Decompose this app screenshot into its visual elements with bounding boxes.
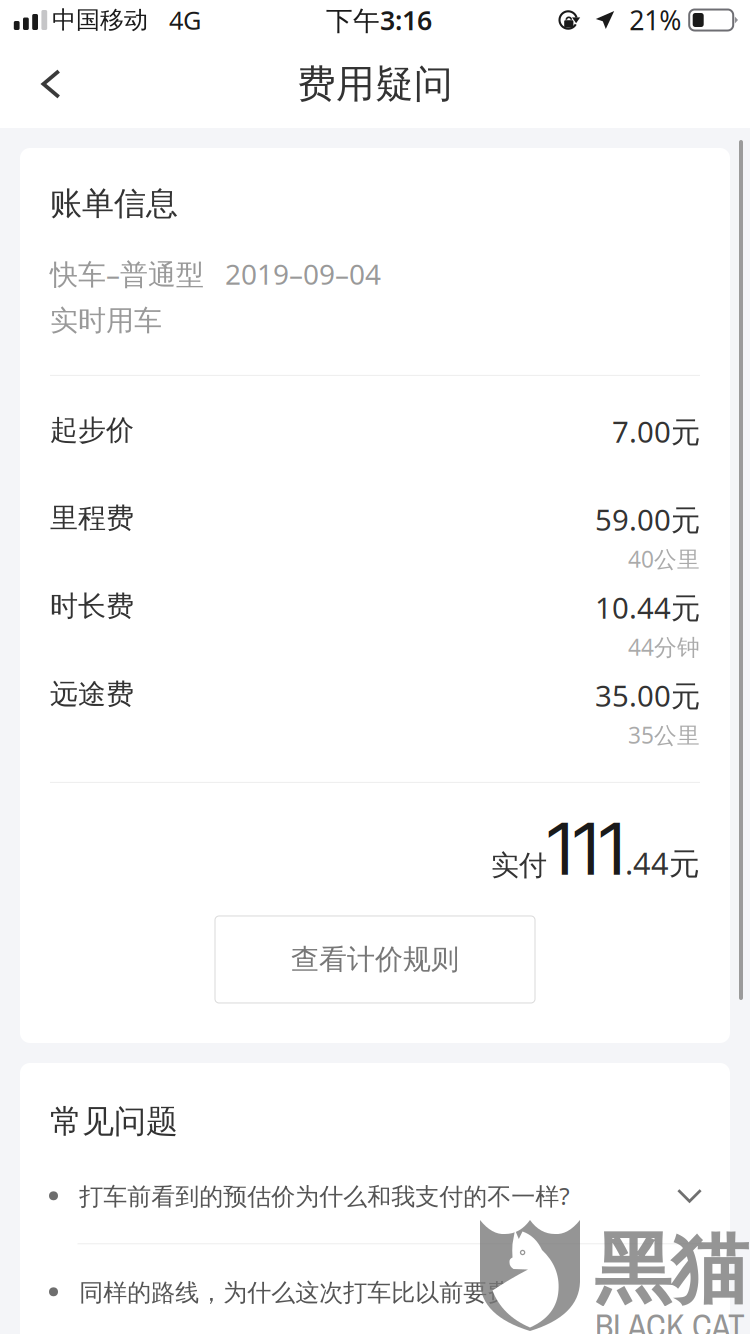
staticText: 中国移动: [52, 5, 148, 35]
staticText: 同样的路线，为什么这次打车比以前要费?: [79, 1276, 521, 1308]
staticText: 111: [547, 805, 625, 892]
staticText: BLACK CAT: [595, 1303, 745, 1334]
staticText: 起步价: [50, 413, 134, 447]
staticText: 里程费: [50, 501, 134, 535]
button[interactable]: 打车前看到的预估价为什么和我支付的不一样?: [20, 1148, 730, 1243]
staticText: 59.00元: [595, 500, 700, 539]
button[interactable]: 查看计价规则: [215, 916, 535, 1003]
staticText: 账单信息: [50, 184, 178, 223]
staticText: 查看计价规则: [291, 942, 459, 977]
staticText: 35公里: [628, 720, 700, 750]
staticText: 35.00元: [595, 676, 700, 715]
staticText: 4G: [169, 3, 201, 37]
staticText: 打车前看到的预估价为什么和我支付的不一样?: [79, 1180, 569, 1212]
button[interactable]: 同样的路线，为什么这次打车比以前要费?: [20, 1244, 730, 1334]
staticText: 时长费: [50, 589, 134, 623]
staticText: 远途费: [50, 677, 134, 711]
staticText: 10.44元: [595, 588, 700, 627]
staticText: .44元: [625, 842, 700, 883]
staticText: 44分钟: [628, 632, 700, 662]
staticText: 实付: [491, 848, 547, 882]
staticText: 费用疑问: [297, 60, 453, 108]
staticText: 下午3:16: [326, 2, 432, 38]
staticText: 7.00元: [612, 412, 700, 451]
staticText: 常见问题: [50, 1102, 178, 1141]
staticText: 21%: [629, 2, 681, 38]
staticText: 快车–普通型 2019–09–04: [50, 255, 381, 292]
button[interactable]: Back: [0, 46, 90, 122]
staticText: 实时用车: [50, 303, 162, 338]
staticText: 黑猫: [594, 1222, 748, 1317]
staticText: 40公里: [628, 544, 700, 574]
